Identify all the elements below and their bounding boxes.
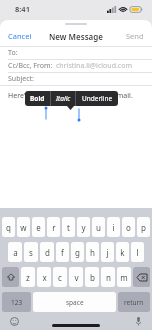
button[interactable]: i <box>107 217 120 237</box>
button[interactable]: e <box>32 217 45 237</box>
staticText: n <box>106 272 111 283</box>
staticText: i <box>112 222 115 233</box>
button[interactable]: f <box>56 242 69 262</box>
staticText: r <box>52 222 56 233</box>
button[interactable]: h <box>86 242 99 262</box>
staticText: Cc/Bcc, From: <box>8 61 53 71</box>
button[interactable]: d <box>40 242 54 262</box>
staticText: g <box>75 247 80 258</box>
staticText: m <box>120 272 128 283</box>
staticText: b <box>90 272 95 283</box>
staticText: f <box>61 247 64 258</box>
staticText: e <box>36 222 41 233</box>
button[interactable]: x <box>37 267 51 287</box>
staticText: w <box>20 222 27 233</box>
button[interactable]: Backspace <box>133 267 150 287</box>
button[interactable]: Cancel <box>0 28 40 44</box>
staticText: italicize text <box>55 91 93 101</box>
button[interactable]: Shift <box>2 267 19 287</box>
staticText: q <box>6 222 11 233</box>
button[interactable]: s <box>24 242 38 262</box>
staticText: u <box>96 222 101 233</box>
staticText: christina.li@icloud.com <box>56 61 132 71</box>
staticText: t <box>67 222 70 233</box>
button[interactable]: Underline <box>76 91 118 106</box>
staticText: v <box>74 272 79 283</box>
staticText: l <box>136 247 139 258</box>
staticText: k <box>120 247 125 258</box>
staticText: Italic <box>56 94 71 103</box>
button[interactable]: j <box>101 242 114 262</box>
staticText: Cancel <box>8 31 32 41</box>
button[interactable]: z <box>21 267 35 287</box>
button[interactable]: y <box>77 217 90 237</box>
button[interactable]: g <box>71 242 84 262</box>
staticText: space <box>66 298 84 307</box>
button[interactable]: Cc/Bcc, From: <box>0 60 152 72</box>
button[interactable]: n <box>101 267 115 287</box>
staticText: z <box>26 272 30 283</box>
staticText: o <box>126 222 131 233</box>
button[interactable]: Dictate <box>132 315 144 327</box>
staticText: a <box>13 247 18 258</box>
button[interactable]: t <box>62 217 75 237</box>
staticText: 8:41 <box>15 4 30 14</box>
button[interactable]: Emoji <box>8 315 20 327</box>
staticText: 123 <box>11 298 23 307</box>
button[interactable]: Italic <box>51 91 75 106</box>
staticText: y <box>81 222 86 233</box>
staticText: s <box>29 247 33 258</box>
staticText: h <box>90 247 95 258</box>
button[interactable]: return <box>118 292 150 312</box>
staticText: return <box>124 298 144 307</box>
staticText: To: <box>8 48 18 58</box>
staticText: p <box>141 222 146 233</box>
button[interactable]: m <box>117 267 131 287</box>
button[interactable]: To: <box>0 47 152 59</box>
button[interactable]: w <box>17 217 30 237</box>
button[interactable]: Send <box>118 28 152 44</box>
button[interactable]: l <box>131 242 144 262</box>
staticText: Send <box>126 31 144 41</box>
button[interactable]: p <box>137 217 150 237</box>
button[interactable]: Bold <box>25 91 50 106</box>
button[interactable]: 123 <box>2 292 31 312</box>
staticText: New Message <box>49 31 103 42</box>
button[interactable]: q <box>2 217 15 237</box>
button[interactable]: u <box>92 217 105 237</box>
button[interactable]: k <box>116 242 129 262</box>
staticText: Bold <box>30 94 45 103</box>
button[interactable]: space <box>33 292 116 312</box>
staticText: j <box>106 247 109 258</box>
staticText: c <box>58 272 62 283</box>
staticText: Subject: <box>8 74 34 84</box>
button[interactable]: c <box>53 267 67 287</box>
staticText: Underline <box>82 94 113 103</box>
button[interactable]: a <box>8 242 22 262</box>
staticText: d <box>45 247 50 258</box>
button[interactable]: v <box>69 267 83 287</box>
button[interactable]: b <box>85 267 99 287</box>
button[interactable]: o <box>122 217 135 237</box>
staticText: Here's how to <box>8 91 55 101</box>
staticText: in an email. <box>93 91 133 101</box>
staticText: x <box>42 272 47 283</box>
button[interactable]: Subject: <box>0 73 152 85</box>
button[interactable]: r <box>47 217 60 237</box>
